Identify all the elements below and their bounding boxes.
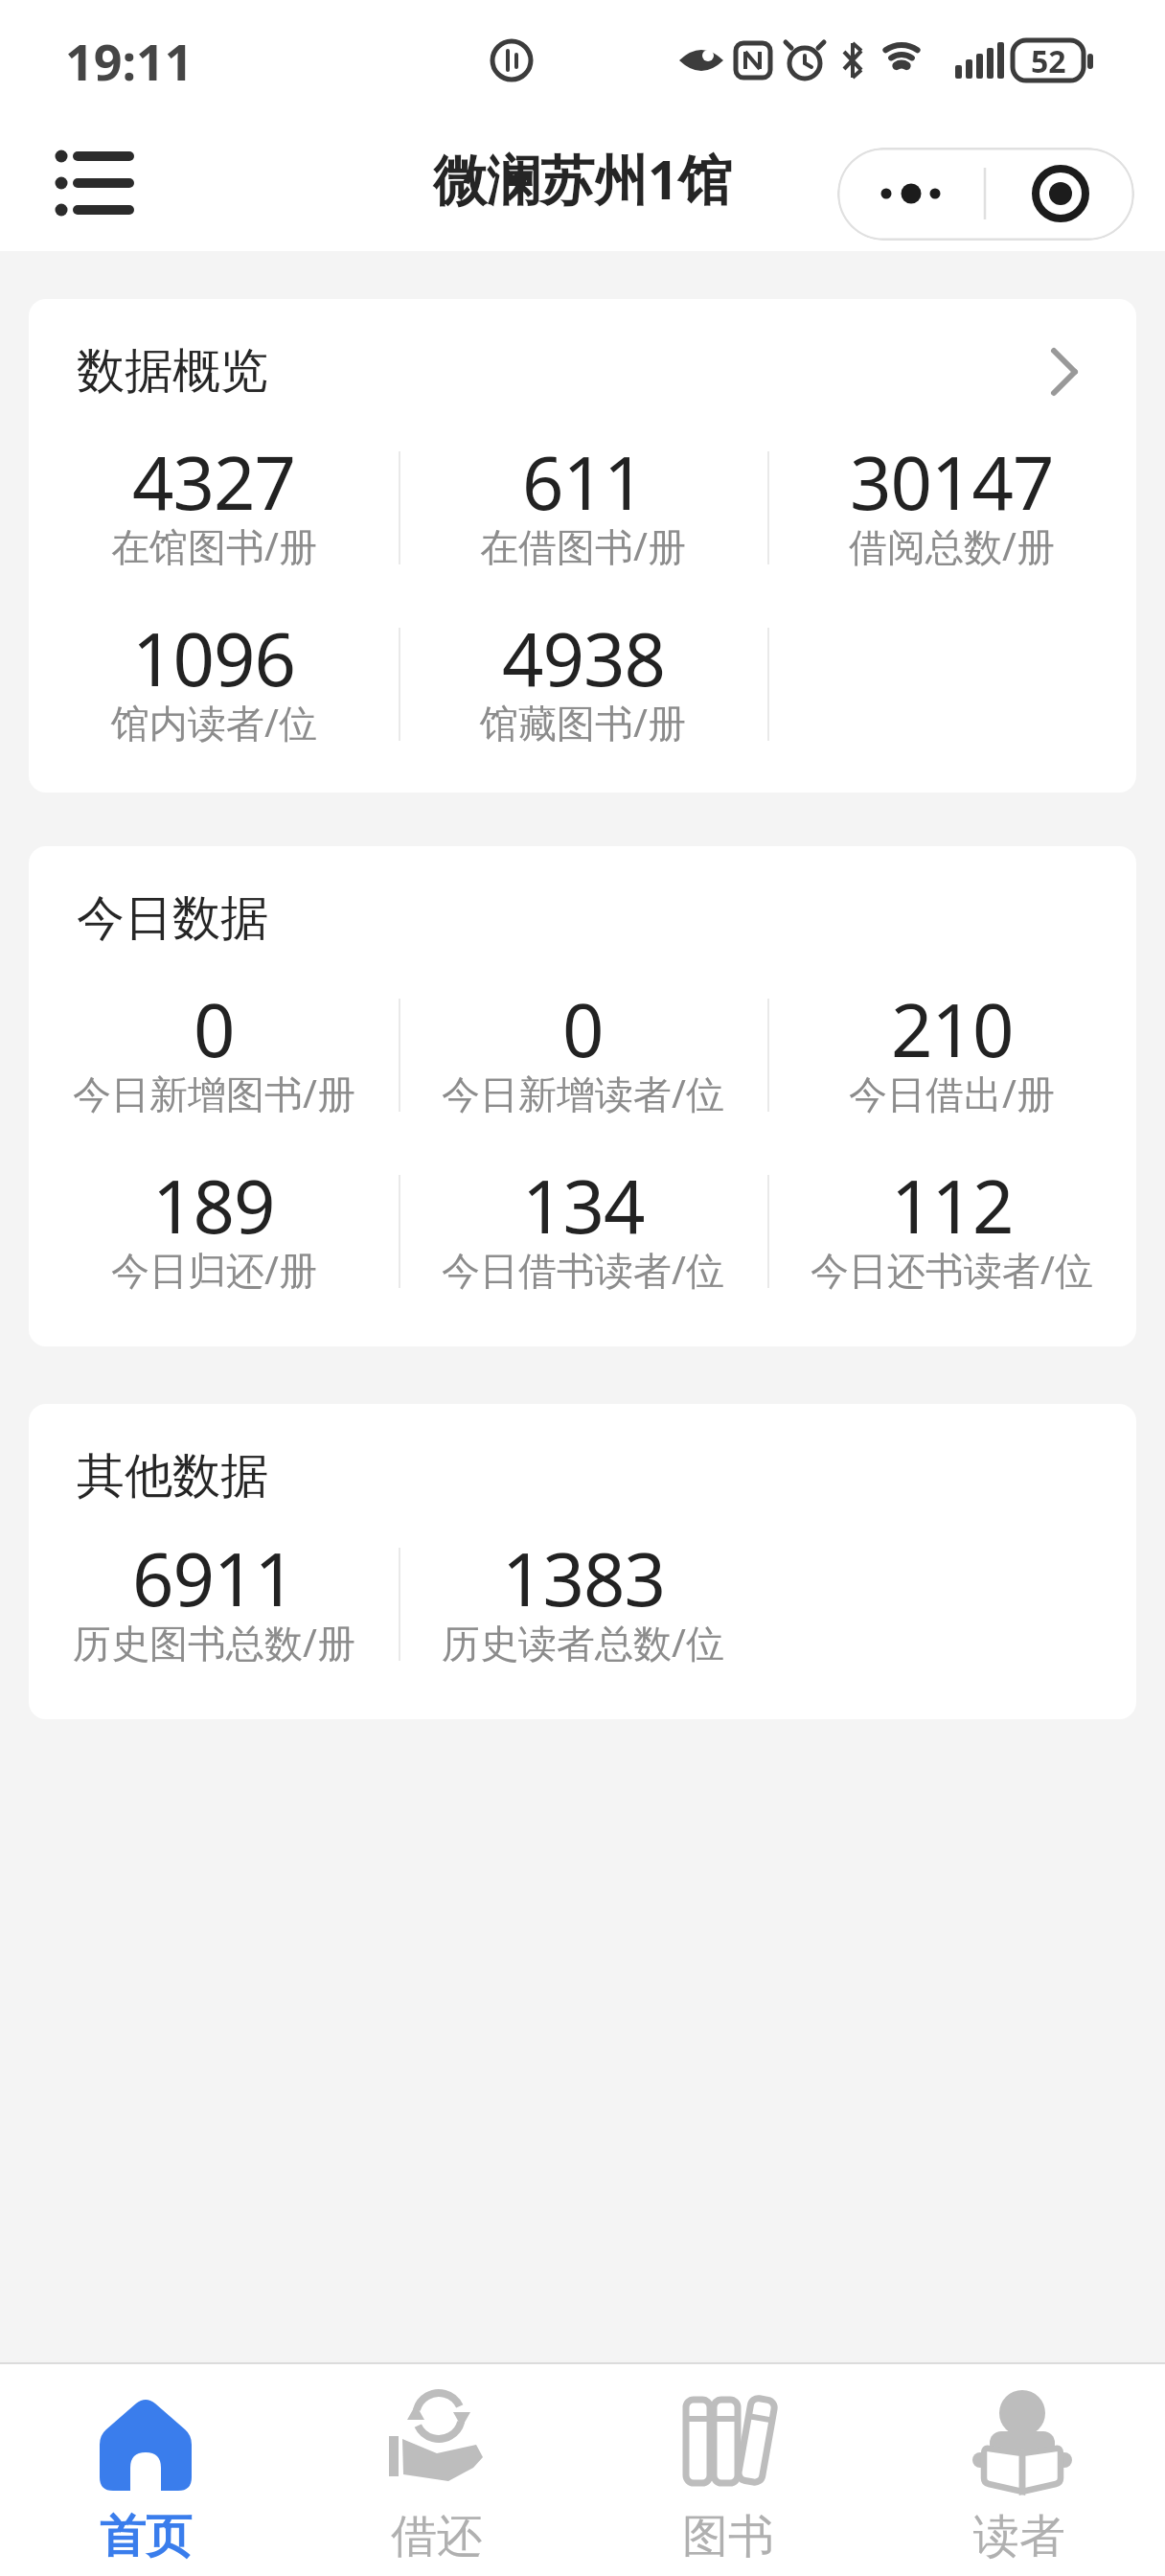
staticText: 首页 — [100, 2508, 192, 2565]
staticText: 借阅总数/册 — [849, 519, 1055, 572]
button[interactable]: 数据概览 — [29, 299, 1136, 793]
staticText: 图书 — [682, 2508, 774, 2565]
staticText: 1096 — [132, 609, 295, 708]
button[interactable] — [38, 130, 144, 236]
staticText: 今日新增图书/册 — [73, 1067, 355, 1119]
staticText: 4938 — [502, 609, 665, 708]
staticText: 今日数据 — [77, 888, 268, 949]
staticText: 134 — [522, 1156, 645, 1255]
staticText: 今日归还/册 — [111, 1243, 317, 1296]
staticText: 历史图书总数/册 — [73, 1616, 355, 1668]
staticText: 读者 — [973, 2508, 1065, 2565]
button[interactable]: 今日数据 — [29, 846, 1136, 1346]
staticText: 馆藏图书/册 — [480, 696, 686, 748]
staticText: 馆内读者/位 — [111, 696, 317, 748]
staticText: 6911 — [132, 1529, 295, 1628]
staticText: 其他数据 — [77, 1446, 268, 1506]
staticText: 历史读者总数/位 — [442, 1616, 724, 1668]
staticText: 今日借出/册 — [849, 1067, 1055, 1119]
staticText: 借还 — [391, 2508, 483, 2565]
button[interactable] — [837, 148, 986, 241]
staticText: 今日新增读者/位 — [442, 1067, 724, 1119]
button[interactable]: 借还 — [291, 2364, 582, 2576]
staticText: 189 — [152, 1156, 275, 1255]
staticText: 0 — [194, 979, 235, 1079]
staticText: 微澜苏州1馆 — [433, 142, 733, 215]
staticText: 今日还书读者/位 — [811, 1243, 1093, 1296]
staticText: 611 — [522, 432, 645, 532]
staticText: 210 — [891, 979, 1014, 1079]
button[interactable] — [986, 148, 1134, 241]
button[interactable]: 首页 — [0, 2364, 291, 2576]
staticText: 今日借书读者/位 — [442, 1243, 724, 1296]
staticText: 4327 — [132, 432, 295, 532]
staticText: 112 — [891, 1156, 1014, 1255]
staticText: 1383 — [502, 1529, 665, 1628]
staticText: 52 — [1031, 40, 1066, 80]
staticText: 30147 — [850, 432, 1054, 532]
button[interactable]: 读者 — [874, 2364, 1165, 2576]
button[interactable]: 其他数据 — [29, 1404, 1136, 1719]
staticText: 数据概览 — [77, 341, 268, 402]
staticText: 在借图书/册 — [480, 519, 686, 572]
staticText: 19:11 — [65, 27, 194, 95]
staticText: 0 — [562, 979, 604, 1079]
button[interactable]: 图书 — [582, 2364, 874, 2576]
staticText: 在馆图书/册 — [111, 519, 317, 572]
